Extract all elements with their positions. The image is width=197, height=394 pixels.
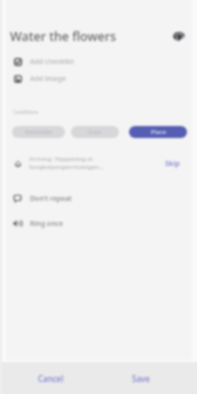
button[interactable]: Ring once xyxy=(6,211,192,236)
staticText: Ring once xyxy=(30,219,63,229)
staticText: Sangkalyangsomuangan... xyxy=(29,163,104,171)
button[interactable]: Save xyxy=(96,362,186,394)
staticText: Skip xyxy=(165,158,180,168)
staticText: Date xyxy=(88,128,102,136)
staticText: Reminder xyxy=(25,128,53,136)
staticText: Cancel xyxy=(38,373,64,384)
staticText: Arriving: Happening at xyxy=(29,155,93,163)
staticText: Save xyxy=(132,373,150,384)
staticText: Water the flowers xyxy=(10,28,117,45)
button[interactable]: Cancel xyxy=(6,362,96,394)
staticText: Don't repeat xyxy=(30,194,72,204)
button[interactable]: Reminder xyxy=(12,126,65,138)
staticText: Add image xyxy=(30,74,66,84)
button[interactable]: Place xyxy=(129,126,187,138)
staticText: Conditions xyxy=(13,109,39,116)
staticText: Place xyxy=(151,128,166,136)
button[interactable]: Arriving: Happening at xyxy=(6,150,192,176)
button[interactable]: Don't repeat xyxy=(6,186,192,211)
button[interactable]: Add checklist xyxy=(6,53,192,70)
button[interactable]: Change colour xyxy=(169,26,189,46)
button[interactable]: Add image xyxy=(6,70,192,87)
staticText: Add checklist xyxy=(30,57,75,67)
button[interactable]: Date xyxy=(71,126,119,138)
